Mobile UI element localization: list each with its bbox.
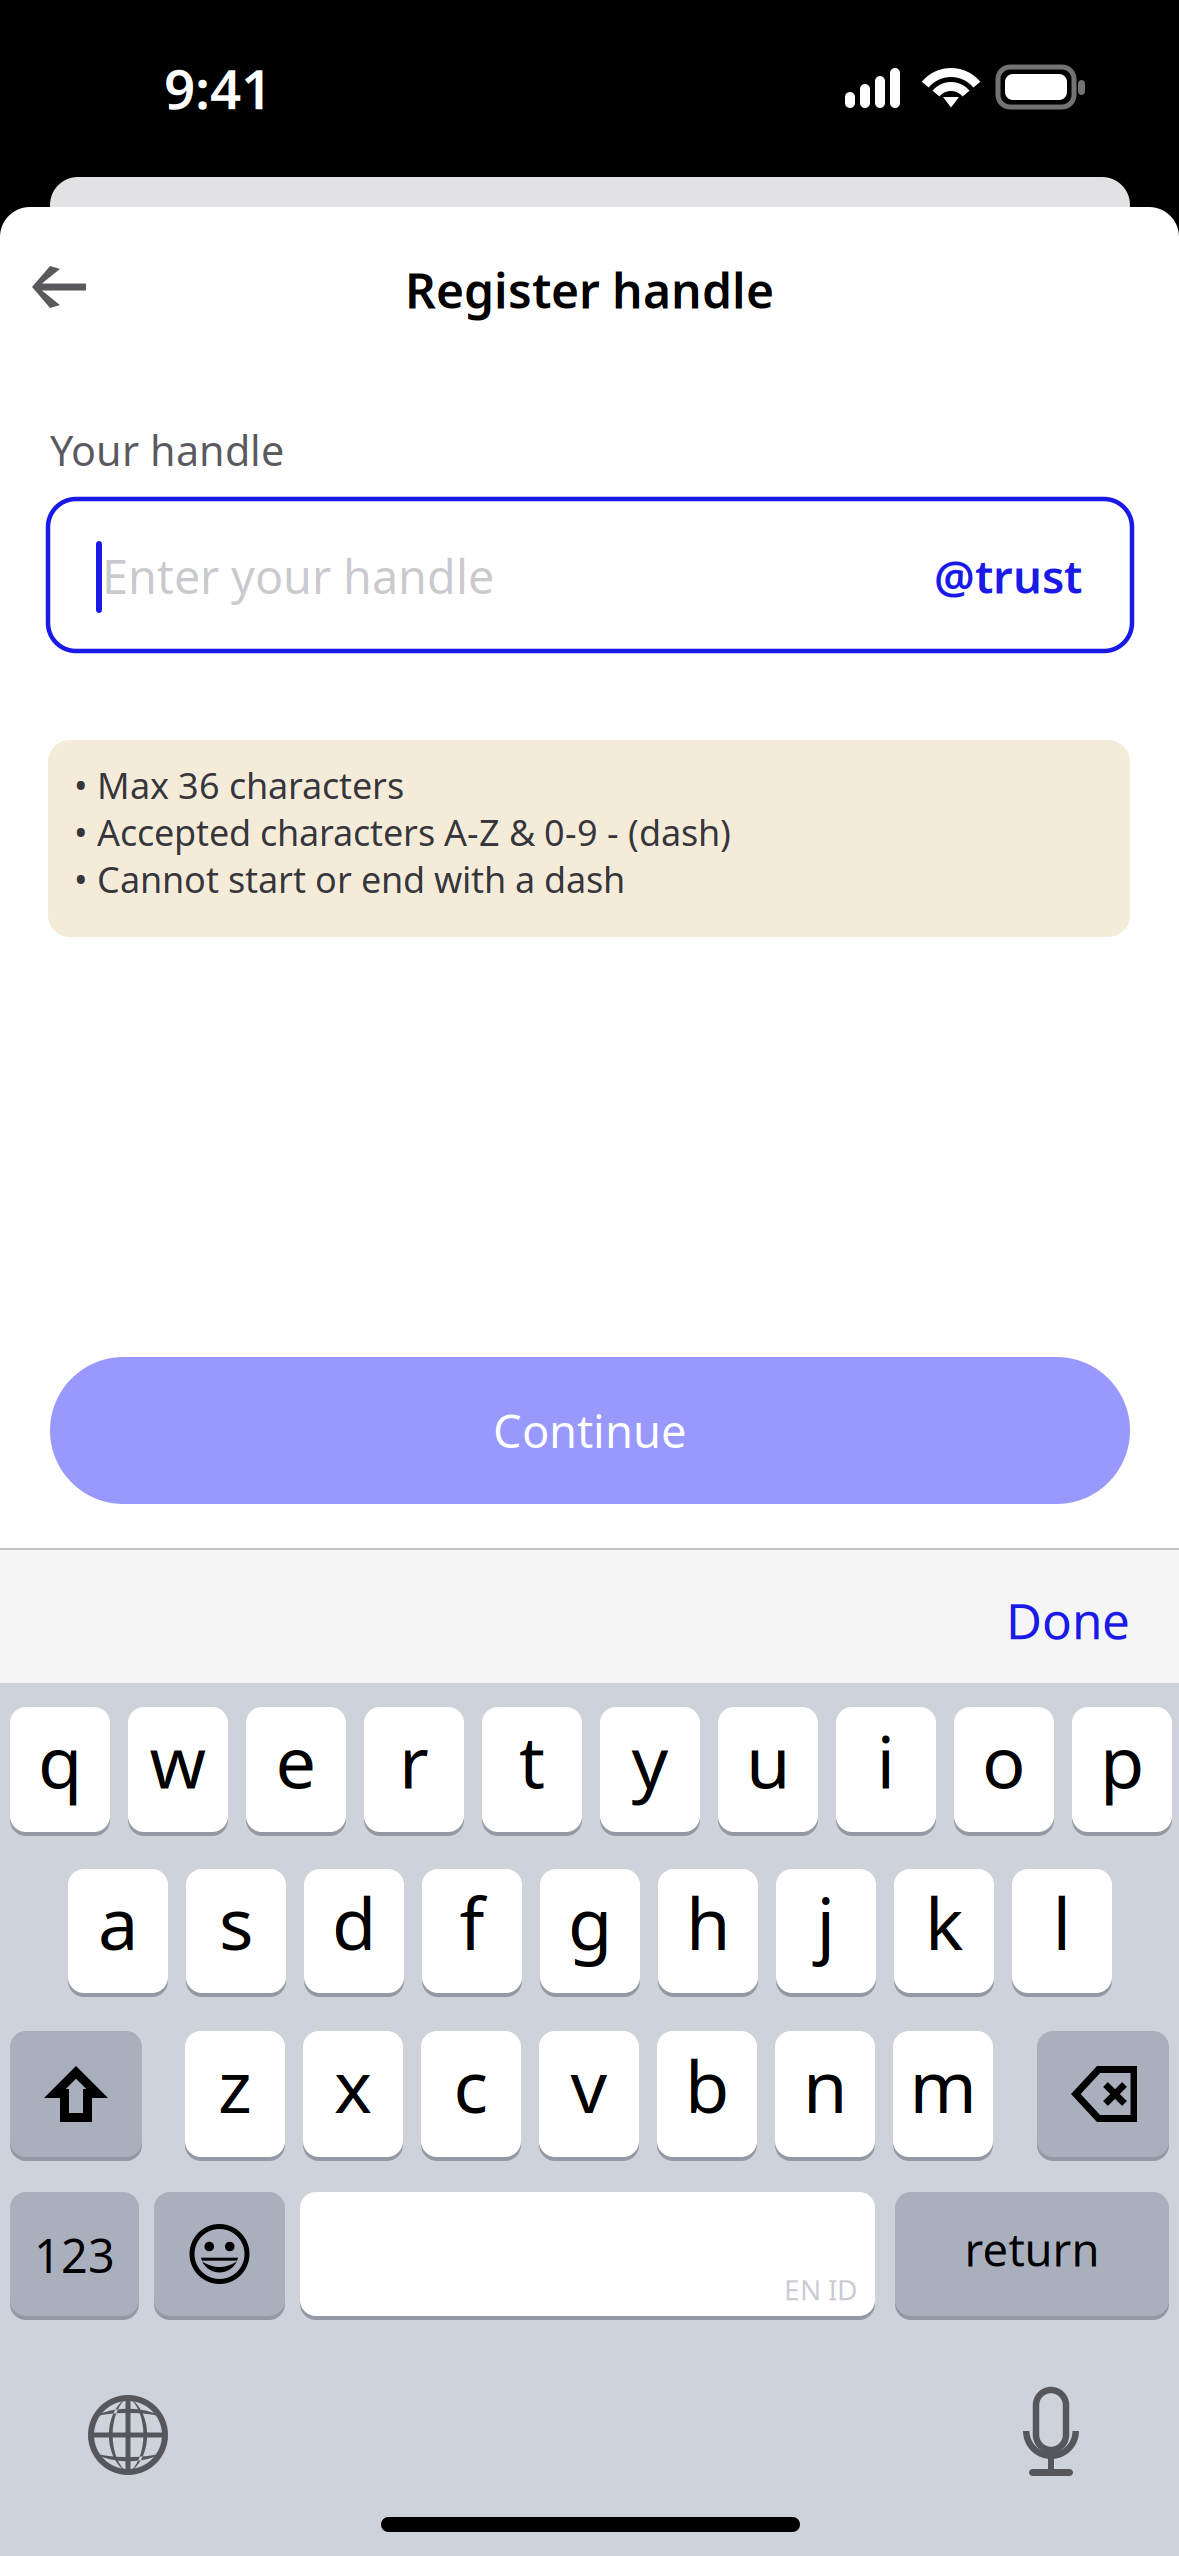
button[interactable]: Delete bbox=[1037, 2031, 1169, 2161]
button[interactable]: a bbox=[68, 1869, 168, 1997]
staticText: p bbox=[1100, 1713, 1144, 1808]
button[interactable]: Shift bbox=[10, 2031, 142, 2161]
button[interactable]: Next keyboard bbox=[88, 2395, 168, 2475]
button[interactable]: Done bbox=[1006, 1587, 1130, 1653]
button[interactable]: return bbox=[895, 2192, 1169, 2320]
staticText: o bbox=[982, 1713, 1026, 1808]
button[interactable]: b bbox=[657, 2031, 757, 2161]
staticText: 123 bbox=[34, 2224, 115, 2286]
button[interactable]: Emoji bbox=[154, 2192, 285, 2320]
staticText: q bbox=[38, 1713, 82, 1808]
staticText: g bbox=[568, 1874, 612, 1970]
staticText: h bbox=[686, 1874, 730, 1970]
staticText: Register handle bbox=[405, 258, 774, 322]
button[interactable]: x bbox=[303, 2031, 403, 2161]
button[interactable]: f bbox=[422, 1869, 522, 1997]
staticText: j bbox=[816, 1874, 835, 1970]
button[interactable]: Space bbox=[300, 2192, 875, 2320]
staticText: i bbox=[876, 1713, 895, 1808]
staticText: y bbox=[631, 1713, 668, 1808]
button[interactable]: z bbox=[185, 2031, 285, 2161]
button[interactable]: t bbox=[482, 1707, 582, 1836]
staticText: w bbox=[149, 1713, 206, 1808]
staticText: • Max 36 characters bbox=[74, 761, 404, 809]
button[interactable]: m bbox=[893, 2031, 993, 2161]
staticText: t bbox=[519, 1713, 545, 1808]
staticText: x bbox=[334, 2037, 372, 2133]
staticText: b bbox=[685, 2037, 729, 2133]
staticText: Continue bbox=[493, 1400, 687, 1461]
staticText: z bbox=[218, 2037, 252, 2133]
staticText: k bbox=[925, 1874, 963, 1970]
button[interactable]: v bbox=[539, 2031, 639, 2161]
staticText: • Accepted characters A-Z & 0-9 - (dash) bbox=[74, 808, 731, 856]
staticText: e bbox=[275, 1713, 316, 1808]
button[interactable]: d bbox=[304, 1869, 404, 1997]
staticText: d bbox=[332, 1874, 376, 1970]
staticText: m bbox=[909, 2037, 976, 2133]
staticText: return bbox=[964, 2219, 1099, 2279]
button[interactable]: y bbox=[600, 1707, 700, 1836]
staticText: Enter your handle bbox=[102, 545, 494, 607]
button[interactable]: k bbox=[894, 1869, 994, 1997]
button[interactable]: h bbox=[658, 1869, 758, 1997]
staticText: c bbox=[453, 2037, 488, 2133]
staticText: f bbox=[459, 1874, 484, 1970]
staticText: n bbox=[803, 2037, 847, 2133]
button[interactable]: w bbox=[128, 1707, 228, 1836]
staticText: s bbox=[219, 1874, 253, 1970]
button[interactable]: s bbox=[186, 1869, 286, 1997]
staticText: 9:41 bbox=[164, 52, 272, 124]
button[interactable]: n bbox=[775, 2031, 875, 2161]
button[interactable]: j bbox=[776, 1869, 876, 1997]
staticText: Your handle bbox=[50, 423, 284, 477]
button[interactable]: g bbox=[540, 1869, 640, 1997]
button[interactable]: l bbox=[1012, 1869, 1112, 1997]
staticText: @trust bbox=[934, 546, 1082, 606]
staticText: r bbox=[399, 1713, 429, 1808]
button[interactable]: e bbox=[246, 1707, 346, 1836]
button[interactable]: u bbox=[718, 1707, 818, 1836]
button[interactable]: Back bbox=[31, 266, 87, 308]
button[interactable]: i bbox=[836, 1707, 936, 1836]
staticText: Done bbox=[1006, 1587, 1130, 1653]
staticText: u bbox=[746, 1713, 790, 1808]
button[interactable]: Dictate bbox=[1014, 2390, 1088, 2476]
button[interactable]: c bbox=[421, 2031, 521, 2161]
button[interactable]: Continue bbox=[50, 1357, 1130, 1504]
button[interactable]: r bbox=[364, 1707, 464, 1836]
staticText: a bbox=[98, 1874, 138, 1970]
staticText: • Cannot start or end with a dash bbox=[74, 855, 625, 903]
button[interactable]: p bbox=[1072, 1707, 1172, 1836]
staticText: v bbox=[570, 2037, 607, 2133]
button[interactable]: q bbox=[10, 1707, 110, 1836]
staticText: EN ID bbox=[784, 2271, 857, 2308]
staticText: l bbox=[1052, 1874, 1071, 1970]
button[interactable]: o bbox=[954, 1707, 1054, 1836]
button[interactable]: 123 bbox=[10, 2192, 139, 2320]
